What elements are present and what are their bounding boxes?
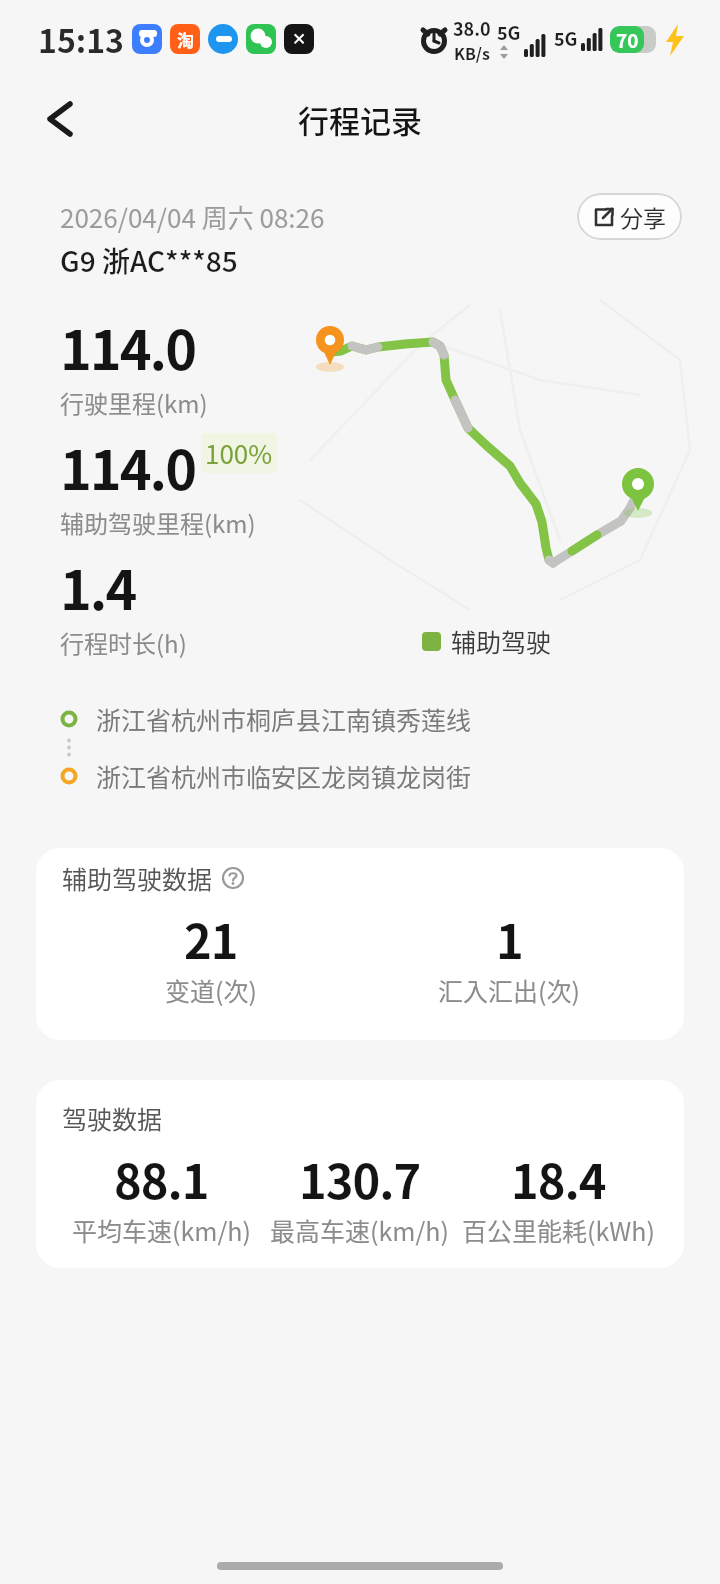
- button[interactable]: 分享: [577, 193, 682, 240]
- staticText: G9 浙AC***85: [60, 240, 238, 281]
- staticText: 变道(次): [165, 972, 257, 1008]
- staticText: 88.1: [114, 1144, 209, 1212]
- staticText: 平均车速(km/h): [72, 1212, 251, 1248]
- staticText: 行驶里程(km): [60, 385, 208, 420]
- staticText: KB/s: [454, 41, 490, 64]
- staticText: 淘: [177, 27, 194, 52]
- button[interactable]: [46, 102, 74, 136]
- staticText: 汇入汇出(次): [438, 972, 580, 1008]
- staticText: 百公里能耗(kWh): [462, 1212, 655, 1248]
- staticText: 114.0: [60, 307, 195, 385]
- staticText: 分享: [620, 200, 666, 233]
- staticText: 38.0: [453, 15, 491, 41]
- staticText: 辅助驾驶数据: [62, 860, 213, 896]
- staticText: 114.0: [60, 427, 195, 505]
- staticText: 浙江省杭州市桐庐县江南镇秀莲线: [96, 701, 472, 737]
- staticText: 最高车速(km/h): [270, 1212, 449, 1248]
- staticText: 5G: [554, 25, 578, 51]
- staticText: 70: [616, 26, 639, 53]
- staticText: ✕: [292, 29, 307, 49]
- staticText: 行程时长(h): [60, 625, 187, 660]
- staticText: 辅助驾驶: [451, 623, 552, 659]
- staticText: 驾驶数据: [62, 1100, 163, 1136]
- staticText: 15:13: [38, 16, 124, 62]
- staticText: 130.7: [299, 1144, 421, 1212]
- staticText: 1: [496, 904, 523, 972]
- staticText: 18.4: [511, 1144, 606, 1212]
- staticText: 行程记录: [298, 97, 422, 142]
- staticText: 5G: [497, 19, 521, 45]
- staticText: 100%: [205, 434, 273, 472]
- staticText: 2026/04/04 周六 08:26: [60, 198, 325, 236]
- button[interactable]: 驾驶数据: [36, 1080, 684, 1268]
- button[interactable]: 辅助驾驶数据: [36, 848, 684, 1040]
- staticText: 1.4: [60, 547, 136, 625]
- staticText: 辅助驾驶里程(km): [60, 505, 256, 540]
- staticText: 21: [184, 904, 238, 972]
- staticText: 浙江省杭州市临安区龙岗镇龙岗街: [96, 758, 472, 794]
